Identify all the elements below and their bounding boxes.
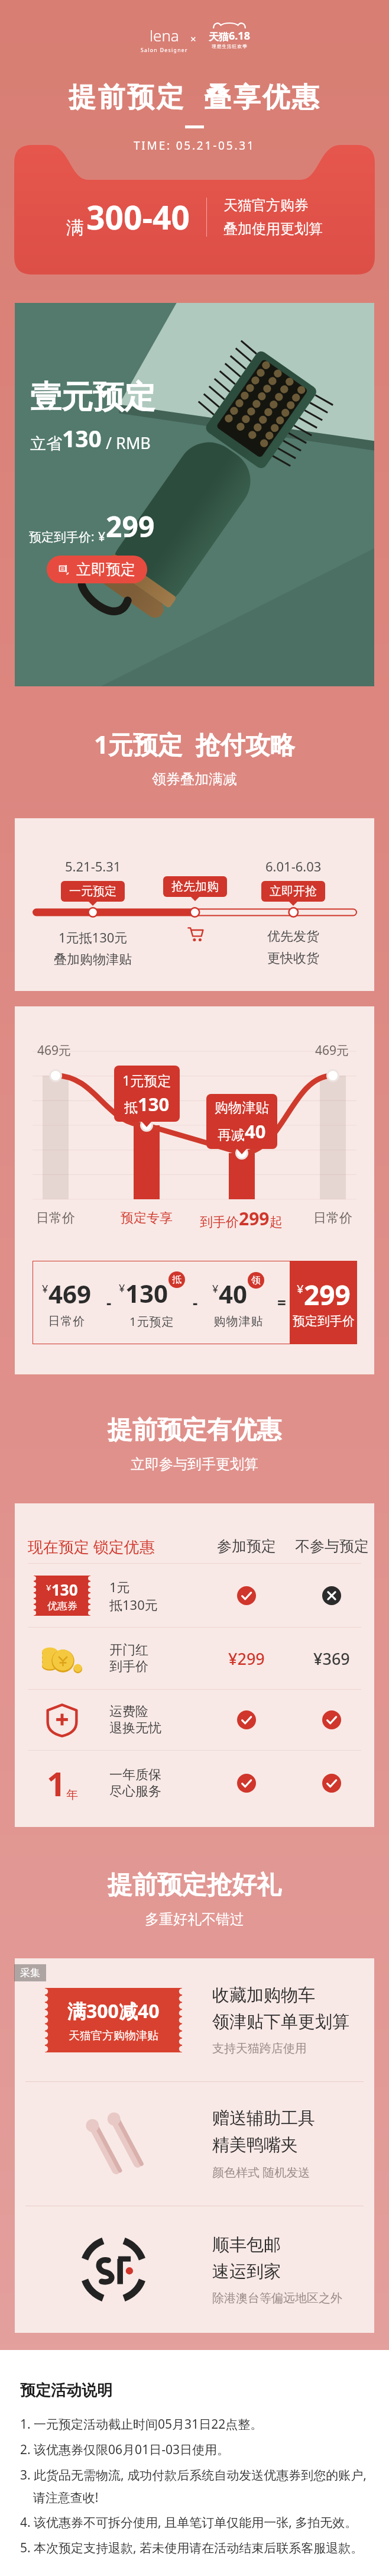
staticText: 日常价 [36, 1210, 75, 1226]
staticText: 1元预定 [122, 1071, 171, 1089]
staticText: 469元 [315, 1042, 349, 1059]
staticText: lena [150, 25, 179, 46]
staticText: 一元预定 [69, 884, 116, 899]
staticText: 抢先加购 [171, 879, 219, 894]
staticText: 469元 [37, 1042, 72, 1059]
staticText: 满300减40 [67, 1998, 160, 2024]
button[interactable]: 一元预定 [61, 881, 125, 902]
staticText: 退换无忧 [109, 1720, 161, 1736]
staticText: 立即参与到手更划算 [131, 1455, 258, 1473]
staticText: 1元预定 [129, 1313, 174, 1329]
staticText: 理想生活狂欢季 [212, 44, 248, 49]
staticText: 抵130元 [109, 1596, 158, 1613]
staticText: 一年质保 [109, 1767, 161, 1783]
staticText: 1元预定 抢付攻略 [94, 727, 295, 761]
staticText: 除港澳台等偏远地区之外 [212, 2291, 342, 2306]
staticText: 日常价 [313, 1210, 352, 1226]
staticText: = [277, 1292, 286, 1313]
staticText: 领津贴下单更划算 [212, 2011, 349, 2033]
staticText: 天猫官方购物津贴 [69, 2029, 158, 2043]
button[interactable]: 抢先加购 [163, 876, 227, 897]
staticText: 叠加购物津贴 [54, 951, 132, 968]
staticText: - [106, 1292, 112, 1313]
staticText: 优先发货 [267, 928, 319, 945]
button[interactable]: 满 [14, 145, 375, 275]
button[interactable]: 立即预定 [47, 556, 147, 583]
staticText: 天猫官方购券 [223, 196, 309, 214]
staticText: 40 [219, 1277, 248, 1310]
staticText: 支持天猫跨店使用 [212, 2041, 307, 2056]
staticText: 5.21-5.31 [65, 857, 121, 875]
staticText: 叠加使用更划算 [223, 220, 323, 238]
staticText: 预定专享 [121, 1210, 173, 1226]
staticText: 年 [66, 1787, 78, 1802]
staticText: 再减 [218, 1126, 245, 1144]
staticText: 立即开抢 [270, 884, 317, 899]
staticText: 130 [62, 422, 102, 454]
staticText: 40 [245, 1119, 266, 1144]
staticText: 299 [106, 507, 155, 545]
staticText: 天猫 [209, 31, 229, 43]
staticText: 1元 [109, 1578, 130, 1596]
staticText: 预定到手价 [293, 1313, 355, 1329]
staticText: 130 [125, 1276, 168, 1310]
staticText: 299 [239, 1206, 270, 1231]
staticText: 预定到手价: [29, 528, 98, 545]
staticText: 多重好礼不错过 [145, 1910, 244, 1928]
staticText: 4. 该优惠券不可拆分使用, 且单笔订单仅能用一张, 多拍无效。 [20, 2514, 358, 2531]
staticText: 不参与预定 [295, 1537, 369, 1555]
staticText: ¥ [46, 1581, 51, 1593]
staticText: 运费险 [109, 1703, 148, 1720]
staticText: 立即预定 [76, 560, 135, 579]
staticText: 精美鸭嘴夹 [212, 2134, 298, 2156]
staticText: ¥ [119, 1281, 125, 1296]
staticText: / RMB [102, 432, 151, 454]
staticText: - [193, 1292, 198, 1313]
staticText: 现在预定 锁定优惠 [28, 1536, 155, 1557]
staticText: 日常价 [48, 1314, 85, 1329]
staticText: 起 [270, 1214, 283, 1231]
staticText: 采集 [20, 1967, 40, 1979]
staticText: ¥ [212, 1281, 219, 1296]
staticText: 130 [51, 1579, 78, 1600]
staticText: 抵 [124, 1099, 138, 1116]
other: 包含 [237, 1710, 256, 1729]
staticText: 469 [48, 1277, 92, 1310]
staticText: 立省 [30, 434, 62, 454]
staticText: 1元抵130元 [59, 928, 128, 946]
staticText: 6.01-6.03 [265, 857, 322, 875]
other: 包含 [322, 1710, 341, 1729]
other: 不包含 [322, 1586, 341, 1605]
staticText: 尽心服务 [109, 1783, 161, 1800]
other: 顺丰速运 [80, 2236, 147, 2303]
staticText: 到手价 [200, 1214, 239, 1231]
staticText: ¥299 [228, 1648, 265, 1670]
staticText: 优惠券 [47, 1600, 77, 1612]
staticText: 参加预定 [217, 1537, 276, 1555]
staticText: ¥ [98, 528, 106, 545]
staticText: 收藏加购物车 [212, 1984, 315, 2006]
staticText: 3. 此货品无需物流, 成功付款后系统自动发送优惠券到您的账户, 请注意查收! [20, 2467, 367, 2506]
staticText: 6.18 [229, 28, 250, 43]
staticText: 顺丰包邮 [212, 2234, 281, 2256]
staticText: 抵 [172, 1274, 181, 1286]
staticText: 满 [66, 217, 84, 239]
staticText: 299 [304, 1276, 351, 1313]
other: 包含 [237, 1774, 256, 1793]
staticText: 购物津贴 [215, 1099, 269, 1116]
staticText: 更快收货 [267, 950, 319, 967]
button[interactable]: 立即开抢 [261, 881, 325, 902]
staticText: 提前预定抢好礼 [108, 1870, 281, 1901]
staticText: 领券叠加满减 [152, 770, 237, 788]
staticText: 提前预定 叠享优惠 [69, 78, 321, 115]
staticText: 1 [47, 1761, 66, 1806]
staticText: 提前预定有优惠 [108, 1415, 281, 1446]
staticText: × [190, 32, 196, 46]
other: 包含 [237, 1586, 256, 1605]
staticText: 壹元预定 [30, 377, 155, 417]
staticText: ¥369 [313, 1648, 350, 1670]
staticText: 130 [138, 1092, 170, 1116]
staticText: 颜色样式 随机发送 [212, 2164, 310, 2180]
staticText: 速运到家 [212, 2261, 281, 2283]
staticText: 购物津贴 [213, 1314, 263, 1329]
